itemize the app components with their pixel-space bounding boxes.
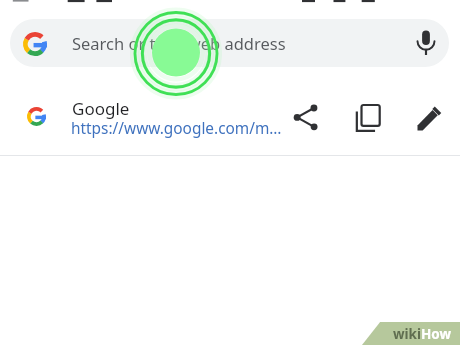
button[interactable]: Search or type web address bbox=[10, 19, 449, 67]
staticText: https://www.google.com/m… bbox=[71, 118, 282, 139]
staticText: Google bbox=[72, 97, 130, 120]
other: Voice search bbox=[413, 29, 439, 55]
button[interactable]: Edit bbox=[405, 94, 453, 142]
staticText: How bbox=[421, 325, 452, 343]
staticText: Search or type web address bbox=[72, 32, 286, 54]
staticText: wiki bbox=[393, 325, 421, 343]
button[interactable]: Share bbox=[282, 94, 330, 142]
button[interactable]: Copy bbox=[343, 94, 391, 142]
button[interactable]: Google bbox=[0, 85, 460, 155]
